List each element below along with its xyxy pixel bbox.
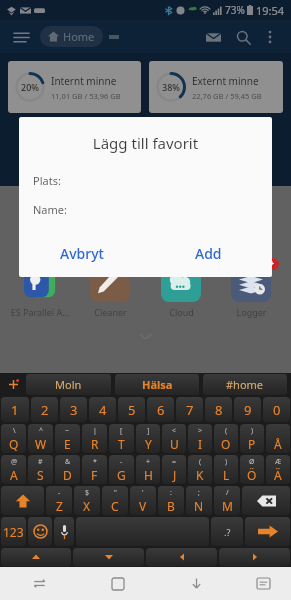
button[interactable]: Space: [76, 517, 209, 546]
button[interactable]: Hälsa: [115, 374, 199, 395]
button[interactable]: -: [109, 455, 134, 484]
button[interactable]: .?: [211, 517, 243, 546]
button[interactable]: Emoji: [28, 517, 52, 546]
staticText: G: [117, 467, 126, 483]
staticText: Logger: [236, 306, 267, 318]
staticText: 11,01 GB / 53,96 GB: [51, 91, 121, 101]
staticText: Hälsa: [142, 377, 173, 392]
button[interactable]: Backspace: [242, 486, 290, 515]
staticText: N: [194, 498, 204, 514]
button[interactable]: Mail: [201, 25, 225, 49]
button[interactable]: Home: [40, 26, 103, 47]
staticText: Lägg till favorit: [19, 133, 272, 153]
button[interactable]: |: [82, 424, 107, 453]
button[interactable]: Ø: [240, 455, 264, 484]
button[interactable]: 0: [263, 397, 290, 422]
button[interactable]: 8: [205, 397, 232, 422]
button[interactable]: Add: [2, 374, 24, 395]
button[interactable]: 123: [1, 517, 26, 546]
staticText: P: [248, 436, 256, 452]
button[interactable]: Recents: [0, 567, 78, 600]
button[interactable]: Moln: [26, 374, 111, 395]
button[interactable]: ]: [136, 424, 160, 453]
staticText: 3: [70, 401, 78, 419]
staticText: Add: [195, 244, 222, 263]
button[interactable]: Menu: [10, 26, 32, 48]
button[interactable]: Keyboard switcher: [236, 567, 291, 600]
button[interactable]: $: [74, 486, 100, 515]
staticText: 38%: [162, 81, 180, 93]
button[interactable]: 999+: [220, 262, 282, 318]
staticText: ]: [147, 426, 150, 436]
button[interactable]: 6: [147, 397, 174, 422]
button[interactable]: Voice input: [54, 517, 74, 546]
button[interactable]: [: [109, 424, 134, 453]
button[interactable]: 3: [60, 397, 87, 422]
button[interactable]: 9: [234, 397, 261, 422]
button[interactable]: (: [214, 424, 238, 453]
staticText: :: [170, 488, 172, 498]
button[interactable]: (: [188, 455, 212, 484]
staticText: A: [10, 467, 18, 483]
button[interactable]: ': [130, 486, 156, 515]
button[interactable]: Tabs: [109, 32, 119, 42]
button[interactable]: -: [46, 486, 72, 515]
button[interactable]: 7: [176, 397, 203, 422]
button[interactable]: =: [162, 455, 186, 484]
button[interactable]: ": [102, 486, 128, 515]
staticText: #home: [226, 377, 264, 392]
button[interactable]: #home: [203, 374, 287, 395]
button[interactable]: :: [158, 486, 184, 515]
button[interactable]: +: [136, 455, 160, 484]
button[interactable]: *: [82, 455, 107, 484]
button[interactable]: &: [55, 455, 80, 484]
staticText: F: [91, 467, 98, 483]
button[interactable]: >: [188, 424, 212, 453]
button[interactable]: Å: [266, 424, 290, 453]
button[interactable]: ~: [55, 424, 80, 453]
staticText: ES Parallel Acc...: [9, 306, 71, 318]
button[interactable]: #: [28, 455, 53, 484]
button[interactable]: Search: [231, 25, 255, 49]
button[interactable]: /: [214, 486, 240, 515]
button[interactable]: Up: [1, 548, 71, 566]
button[interactable]: Right: [219, 548, 290, 566]
button[interactable]: Add: [145, 233, 272, 273]
button[interactable]: Enter: [245, 517, 290, 546]
button[interactable]: Æ: [266, 455, 290, 484]
button[interactable]: 2: [31, 397, 58, 422]
button[interactable]: Left: [146, 548, 217, 566]
button[interactable]: Cloud: [150, 262, 212, 318]
staticText: 19:54: [256, 3, 285, 18]
button[interactable]: \: [1, 424, 26, 453]
button[interactable]: Down: [73, 548, 144, 566]
button[interactable]: @: [1, 455, 26, 484]
button[interactable]: NEW: [9, 262, 71, 318]
button[interactable]: Cleaner: [79, 262, 141, 318]
staticText: ~: [65, 426, 70, 436]
button[interactable]: ^: [28, 424, 53, 453]
button[interactable]: ;: [186, 486, 212, 515]
button[interactable]: ): [240, 424, 264, 453]
button[interactable]: <: [162, 424, 186, 453]
button[interactable]: Avbryt: [19, 233, 145, 273]
button[interactable]: Home: [78, 567, 157, 600]
button[interactable]: 5: [118, 397, 145, 422]
button[interactable]: Shift: [1, 486, 44, 515]
staticText: K: [196, 467, 204, 483]
button[interactable]: 38%: [149, 61, 283, 113]
button[interactable]: 20%: [8, 61, 141, 113]
staticText: U: [170, 436, 179, 452]
button[interactable]: 4: [89, 397, 116, 422]
button[interactable]: More options: [259, 26, 281, 48]
staticText: R: [91, 436, 99, 452]
button[interactable]: 1: [1, 397, 29, 422]
button[interactable]: Hide keyboard: [157, 567, 236, 600]
button[interactable]: ): [214, 455, 238, 484]
